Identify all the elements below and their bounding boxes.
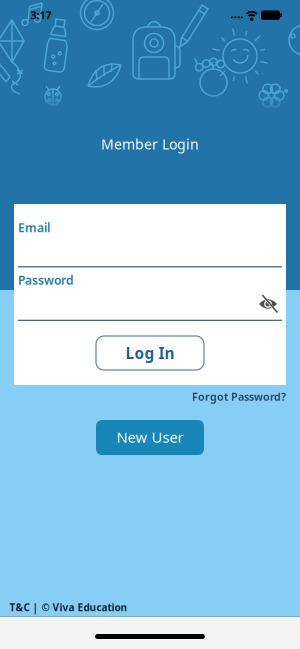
button[interactable]: T&C | © Viva Education: [9, 600, 127, 614]
button[interactable]: Forgot Password?: [192, 389, 286, 404]
button[interactable]: Password: [18, 272, 282, 321]
staticText: 3:17: [30, 8, 51, 22]
staticText: Forgot Password?: [192, 389, 286, 404]
button[interactable]: Show password: [256, 291, 280, 315]
button[interactable]: New User: [96, 420, 204, 455]
staticText: Log In: [125, 343, 174, 363]
staticText: Password: [18, 272, 74, 288]
staticText: T&C | © Viva Education: [9, 600, 127, 614]
staticText: New User: [116, 427, 183, 447]
button[interactable]: Log In: [96, 336, 204, 370]
button[interactable]: Email: [18, 220, 282, 267]
staticText: Member Login: [101, 134, 199, 154]
staticText: Email: [18, 220, 50, 236]
